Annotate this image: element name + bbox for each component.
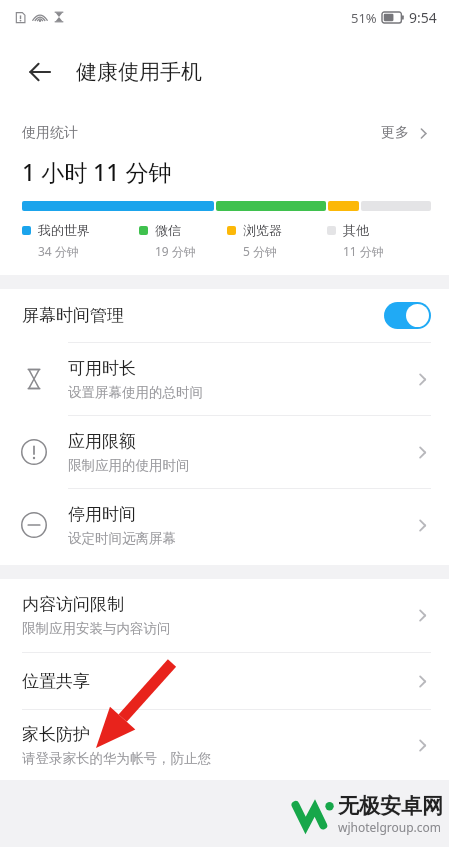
staticText: 家长防护 (22, 724, 90, 745)
staticText: 设定时间远离屏幕 (68, 530, 176, 547)
staticText: 可用时长 (68, 358, 136, 379)
staticText: 限制应用安装与内容访问 (22, 620, 171, 637)
staticText: 内容访问限制 (22, 594, 124, 615)
staticText: 停用时间 (68, 504, 136, 525)
staticText: 应用限额 (68, 431, 136, 452)
staticText: 34 分钟 (38, 243, 79, 259)
staticText: 9:54 (409, 8, 437, 27)
staticText: 设置屏幕使用的总时间 (68, 384, 203, 401)
button[interactable]: Back (20, 52, 60, 92)
staticText: 1 小时 11 分钟 (22, 156, 172, 187)
staticText: 51% (351, 9, 377, 27)
staticText: wjhotelgroup.com (338, 819, 442, 835)
button[interactable]: 屏幕时间管理 (0, 289, 449, 342)
button[interactable]: 可用时长 (0, 343, 449, 415)
staticText: 19 分钟 (155, 243, 196, 259)
staticText: 限制应用的使用时间 (68, 457, 190, 474)
staticText: 健康使用手机 (76, 59, 202, 85)
staticText: 11 分钟 (343, 243, 384, 259)
staticText: 5 分钟 (243, 243, 277, 259)
staticText: 屏幕时间管理 (22, 305, 124, 326)
button[interactable]: 停用时间 (0, 489, 449, 561)
button[interactable]: 家长防护 (0, 710, 449, 780)
staticText: 我的世界 (38, 222, 90, 238)
staticText: 更多 (381, 124, 409, 142)
staticText: 无极安卓网 (338, 793, 443, 819)
staticText: 请登录家长的华为帐号，防止您 (22, 750, 211, 767)
button[interactable]: 位置共享 (0, 653, 449, 709)
button[interactable]: 应用限额 (0, 416, 449, 488)
button[interactable]: 使用统计 (22, 124, 431, 142)
staticText: 使用统计 (22, 124, 78, 142)
button[interactable]: 内容访问限制 (0, 579, 449, 652)
staticText: 微信 (155, 222, 181, 238)
staticText: 浏览器 (243, 222, 282, 238)
staticText: 其他 (343, 222, 369, 238)
staticText: 位置共享 (22, 671, 90, 692)
